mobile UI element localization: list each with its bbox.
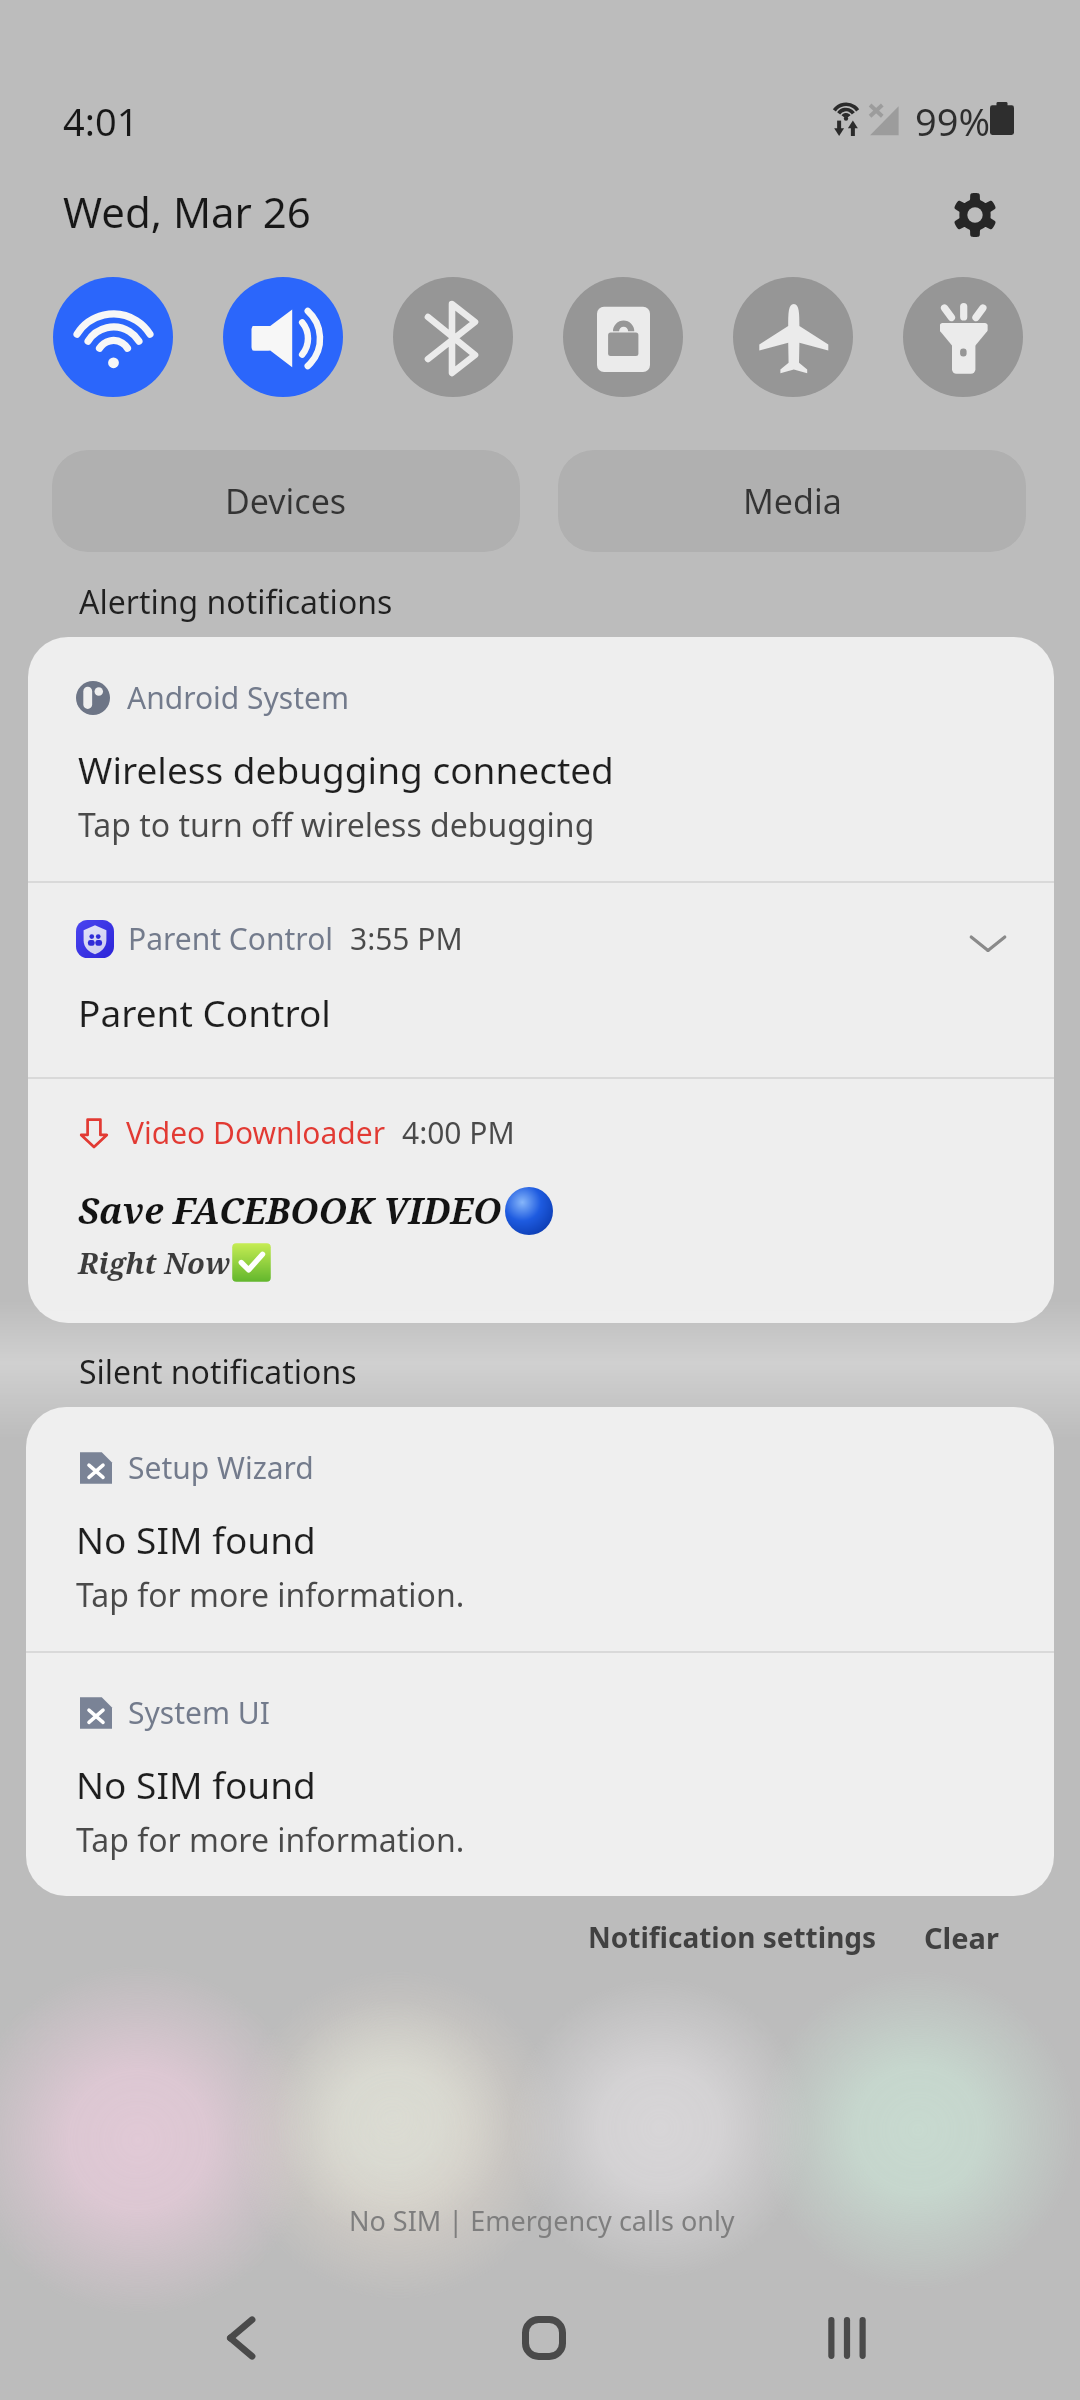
staticText: Right Now [78,1243,231,1282]
staticText: Android System [127,677,350,718]
button[interactable]: Sound [223,277,343,397]
button[interactable]: Recent apps [787,2278,907,2398]
button[interactable]: Expand notification [958,912,1018,972]
staticText: Tap for more information. [76,1573,465,1617]
button[interactable]: Clear [903,1902,1019,1972]
staticText: Clear [924,1918,999,1957]
staticText: Wireless debugging connected [78,744,614,794]
staticText: Media [743,478,842,524]
staticText: Wed, Mar 26 [63,183,311,240]
button[interactable]: Back [181,2278,301,2398]
staticText: Silent notifications [79,1350,357,1394]
button[interactable]: Bluetooth [393,277,513,397]
button[interactable]: Settings [945,185,1005,245]
staticText: Parent Control [128,918,334,959]
staticText: Devices [225,478,347,524]
button[interactable]: Parent Control [28,882,1054,1078]
staticText: Tap to turn off wireless debugging [78,803,595,847]
button[interactable]: Devices [52,450,520,552]
button[interactable]: Setup Wizard [26,1407,1054,1652]
button[interactable]: Screen lock [563,277,683,397]
button[interactable]: Airplane mode [733,277,853,397]
button[interactable]: Home [484,2278,604,2398]
staticText: No SIM found [76,1514,316,1564]
staticText: 4:01 [63,95,139,147]
staticText: Tap for more information. [76,1818,465,1862]
staticText: Notification settings [588,1918,877,1956]
staticText: Setup Wizard [128,1447,314,1488]
button[interactable]: Media [558,450,1026,552]
staticText: Save FACEBOOK VIDEO [78,1186,502,1235]
button[interactable]: Notification settings [576,1902,888,1972]
staticText: 4:00 PM [402,1112,515,1153]
staticText: 99% [915,95,991,147]
staticText: 3:55 PM [350,918,463,959]
button[interactable]: Flashlight [903,277,1023,397]
staticText: Alerting notifications [79,580,393,624]
staticText: No SIM found [76,1759,316,1809]
button[interactable]: Android System [28,637,1054,882]
staticText: No SIM | Emergency calls only [349,2202,735,2239]
staticText: System UI [128,1692,270,1733]
button[interactable]: System UI [26,1652,1054,1896]
staticText: Parent Control [78,987,331,1037]
staticText: Video Downloader [126,1112,386,1153]
button[interactable]: Wi-Fi [53,277,173,397]
button[interactable]: Video Downloader [28,1078,1054,1323]
